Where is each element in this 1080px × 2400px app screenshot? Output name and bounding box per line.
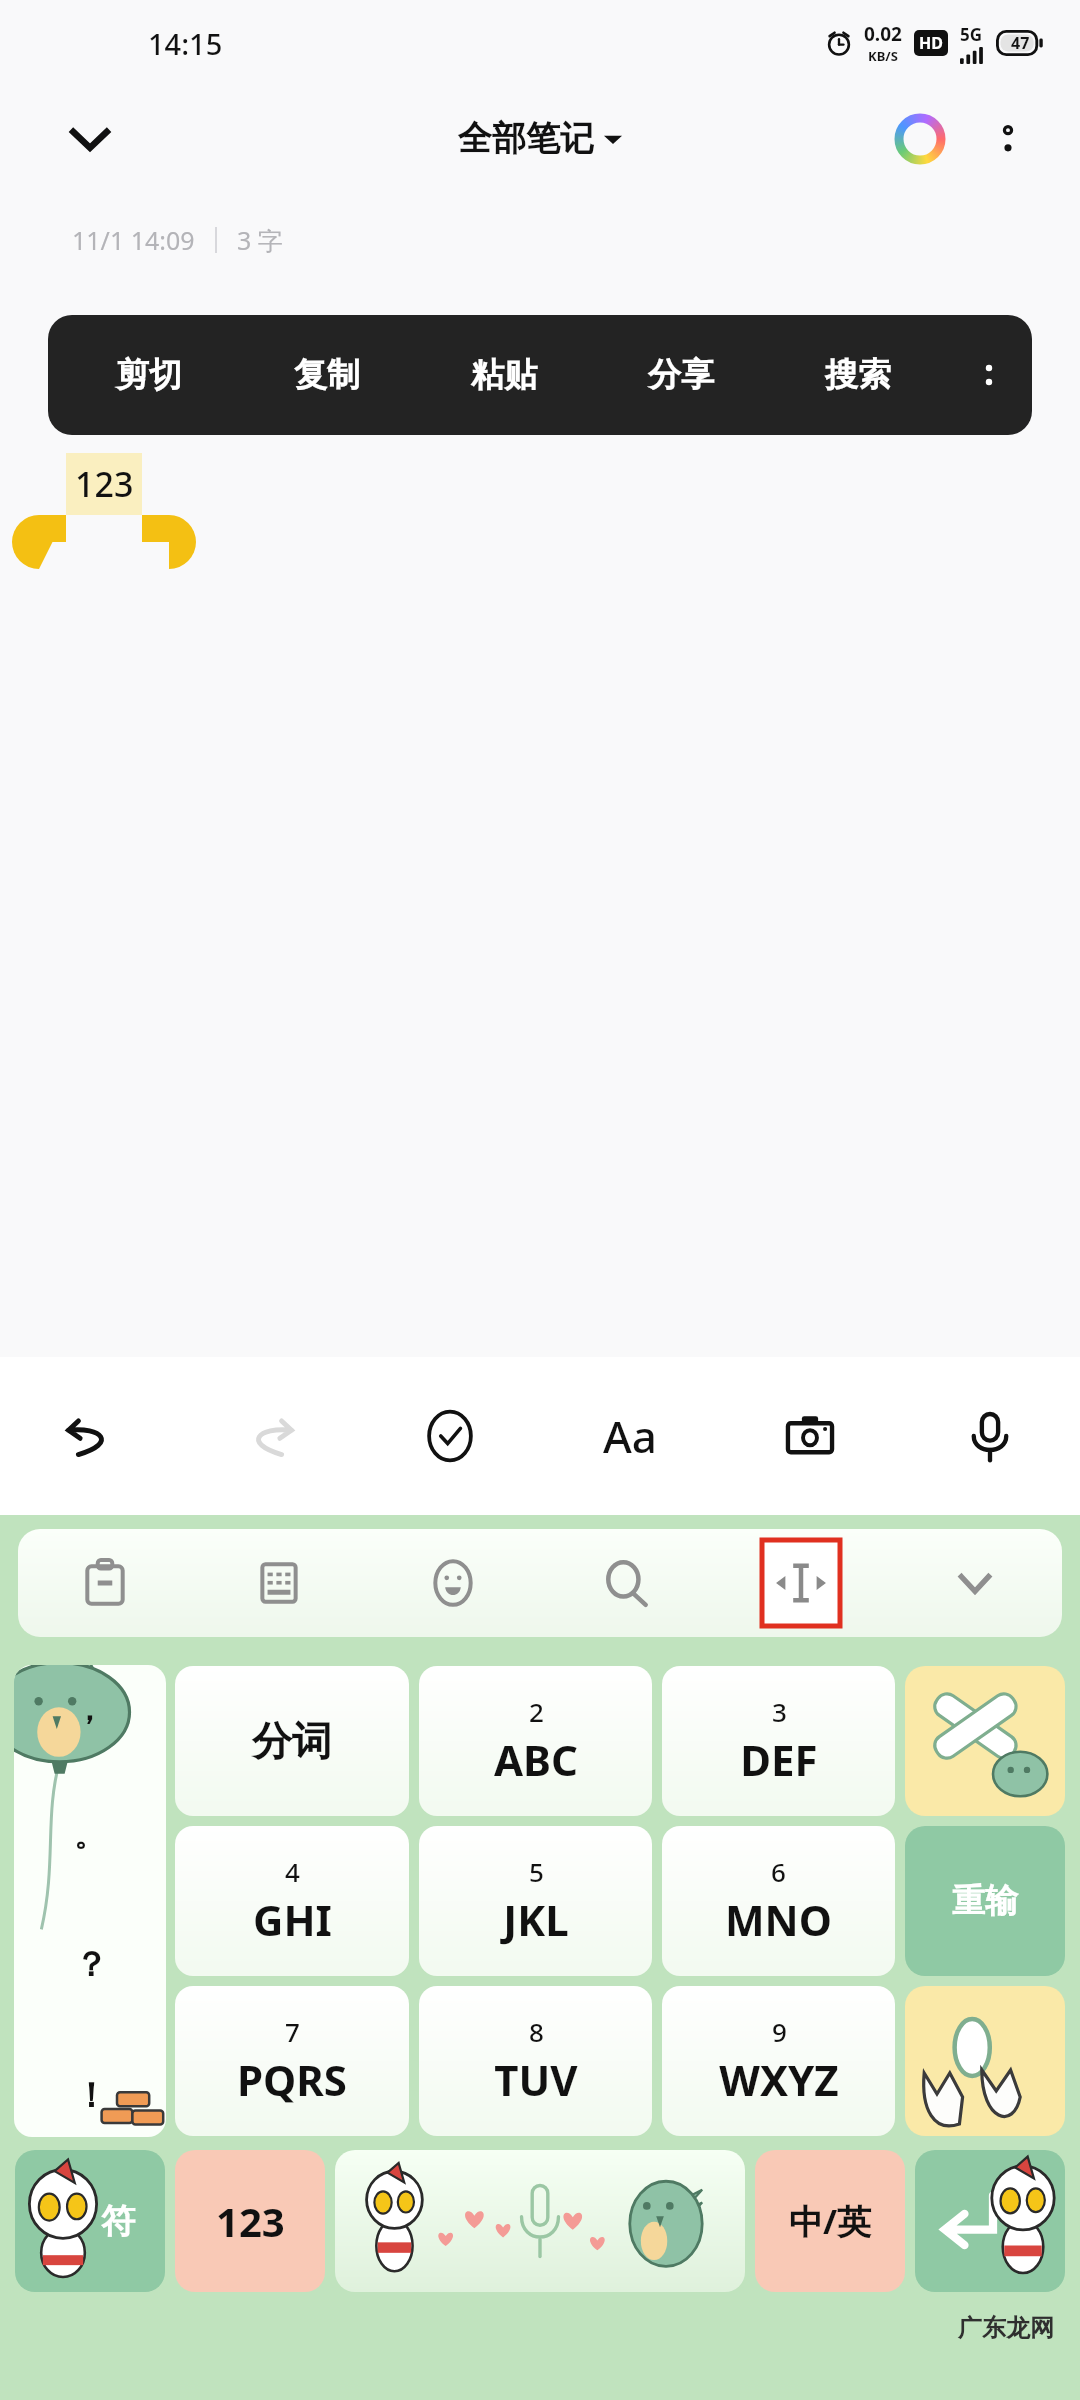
- button[interactable]: 5: [419, 1826, 652, 1976]
- staticText: 14:15: [148, 24, 223, 63]
- button[interactable]: Done: [360, 1357, 540, 1515]
- button[interactable]: Move cursor: [714, 1529, 888, 1637]
- staticText: 2: [529, 1694, 544, 1729]
- button[interactable]: Keyboard layout: [192, 1529, 366, 1637]
- staticText: 11/1 14:09: [72, 223, 195, 257]
- staticText: 5G: [960, 23, 983, 46]
- button[interactable]: 全部笔记: [458, 117, 622, 160]
- button[interactable]: Undo: [0, 1357, 180, 1515]
- staticText: 4: [285, 1854, 300, 1889]
- staticText: 123: [216, 2194, 285, 2248]
- button[interactable]: Format: [540, 1357, 720, 1515]
- staticText: 重输: [952, 1880, 1018, 1922]
- button[interactable]: 分享: [592, 315, 769, 435]
- button[interactable]: 2: [419, 1666, 652, 1816]
- staticText: 复制: [294, 354, 360, 396]
- staticText: 粘贴: [471, 354, 537, 396]
- button[interactable]: 中/英: [755, 2150, 905, 2292]
- staticText: JKL: [503, 1891, 569, 1948]
- staticText: DEF: [740, 1731, 818, 1788]
- staticText: 符: [101, 2200, 135, 2243]
- staticText: 分享: [648, 354, 714, 396]
- button[interactable]: 4: [175, 1826, 409, 1976]
- button[interactable]: 0: [905, 1986, 1065, 2136]
- button[interactable]: 分词: [175, 1666, 409, 1816]
- staticText: Aa: [603, 1406, 657, 1466]
- button[interactable]: 复制: [238, 315, 415, 435]
- button[interactable]: 剪切: [60, 315, 238, 435]
- button[interactable]: 重输: [905, 1826, 1065, 1976]
- button[interactable]: 粘贴: [415, 315, 592, 435]
- button[interactable]: Space: [335, 2150, 745, 2292]
- button[interactable]: ，: [14, 1665, 166, 2137]
- button[interactable]: 3: [662, 1666, 895, 1816]
- staticText: HD: [919, 32, 943, 54]
- button[interactable]: 7: [175, 1986, 409, 2136]
- staticText: 中/英: [789, 2198, 872, 2244]
- staticText: TUV: [494, 2051, 578, 2108]
- button[interactable]: 搜索: [769, 315, 946, 435]
- staticText: WXYZ: [719, 2051, 839, 2108]
- staticText: MNO: [725, 1891, 832, 1948]
- button[interactable]: Camera: [720, 1357, 900, 1515]
- button[interactable]: More: [946, 315, 1032, 435]
- button[interactable]: Emoji: [366, 1529, 540, 1637]
- staticText: 。: [74, 1817, 104, 1855]
- button[interactable]: 123: [175, 2150, 325, 2292]
- button[interactable]: Clipboard: [18, 1529, 192, 1637]
- staticText: 8: [529, 2014, 544, 2049]
- staticText: 广东龙网: [958, 2313, 1054, 2343]
- staticText: PQRS: [237, 2051, 347, 2108]
- staticText: ？: [74, 1943, 108, 1986]
- button[interactable]: More options: [978, 109, 1038, 169]
- staticText: ，: [74, 1691, 104, 1729]
- button[interactable]: 6: [662, 1826, 895, 1976]
- staticText: 123: [75, 461, 134, 507]
- button[interactable]: Collapse: [60, 109, 120, 169]
- button[interactable]: Redo: [180, 1357, 360, 1515]
- staticText: 3: [772, 1694, 787, 1729]
- button[interactable]: Backspace: [905, 1666, 1065, 1816]
- staticText: 9: [772, 2014, 787, 2049]
- button[interactable]: Enter: [915, 2150, 1065, 2292]
- button[interactable]: Search: [540, 1529, 714, 1637]
- staticText: 6: [771, 1854, 786, 1889]
- staticText: ABC: [494, 1731, 578, 1788]
- staticText: KB/S: [868, 47, 898, 65]
- staticText: 搜索: [825, 354, 891, 396]
- button[interactable]: 9: [662, 1986, 895, 2136]
- staticText: 分词: [252, 1716, 332, 1766]
- staticText: 0.02: [864, 21, 902, 47]
- button[interactable]: Theme: [888, 107, 952, 171]
- staticText: 47: [1011, 32, 1030, 54]
- button[interactable]: Symbols: [15, 2150, 165, 2292]
- staticText: GHI: [253, 1891, 332, 1948]
- button[interactable]: 8: [419, 1986, 652, 2136]
- staticText: 3 字: [237, 223, 283, 257]
- button[interactable]: Voice: [900, 1357, 1080, 1515]
- staticText: 5: [529, 1854, 544, 1889]
- staticText: 剪切: [116, 354, 182, 396]
- staticText: 7: [285, 2014, 300, 2049]
- staticText: ！: [74, 2074, 108, 2117]
- button[interactable]: Hide keyboard: [888, 1529, 1062, 1637]
- staticText: 全部笔记: [458, 117, 594, 160]
